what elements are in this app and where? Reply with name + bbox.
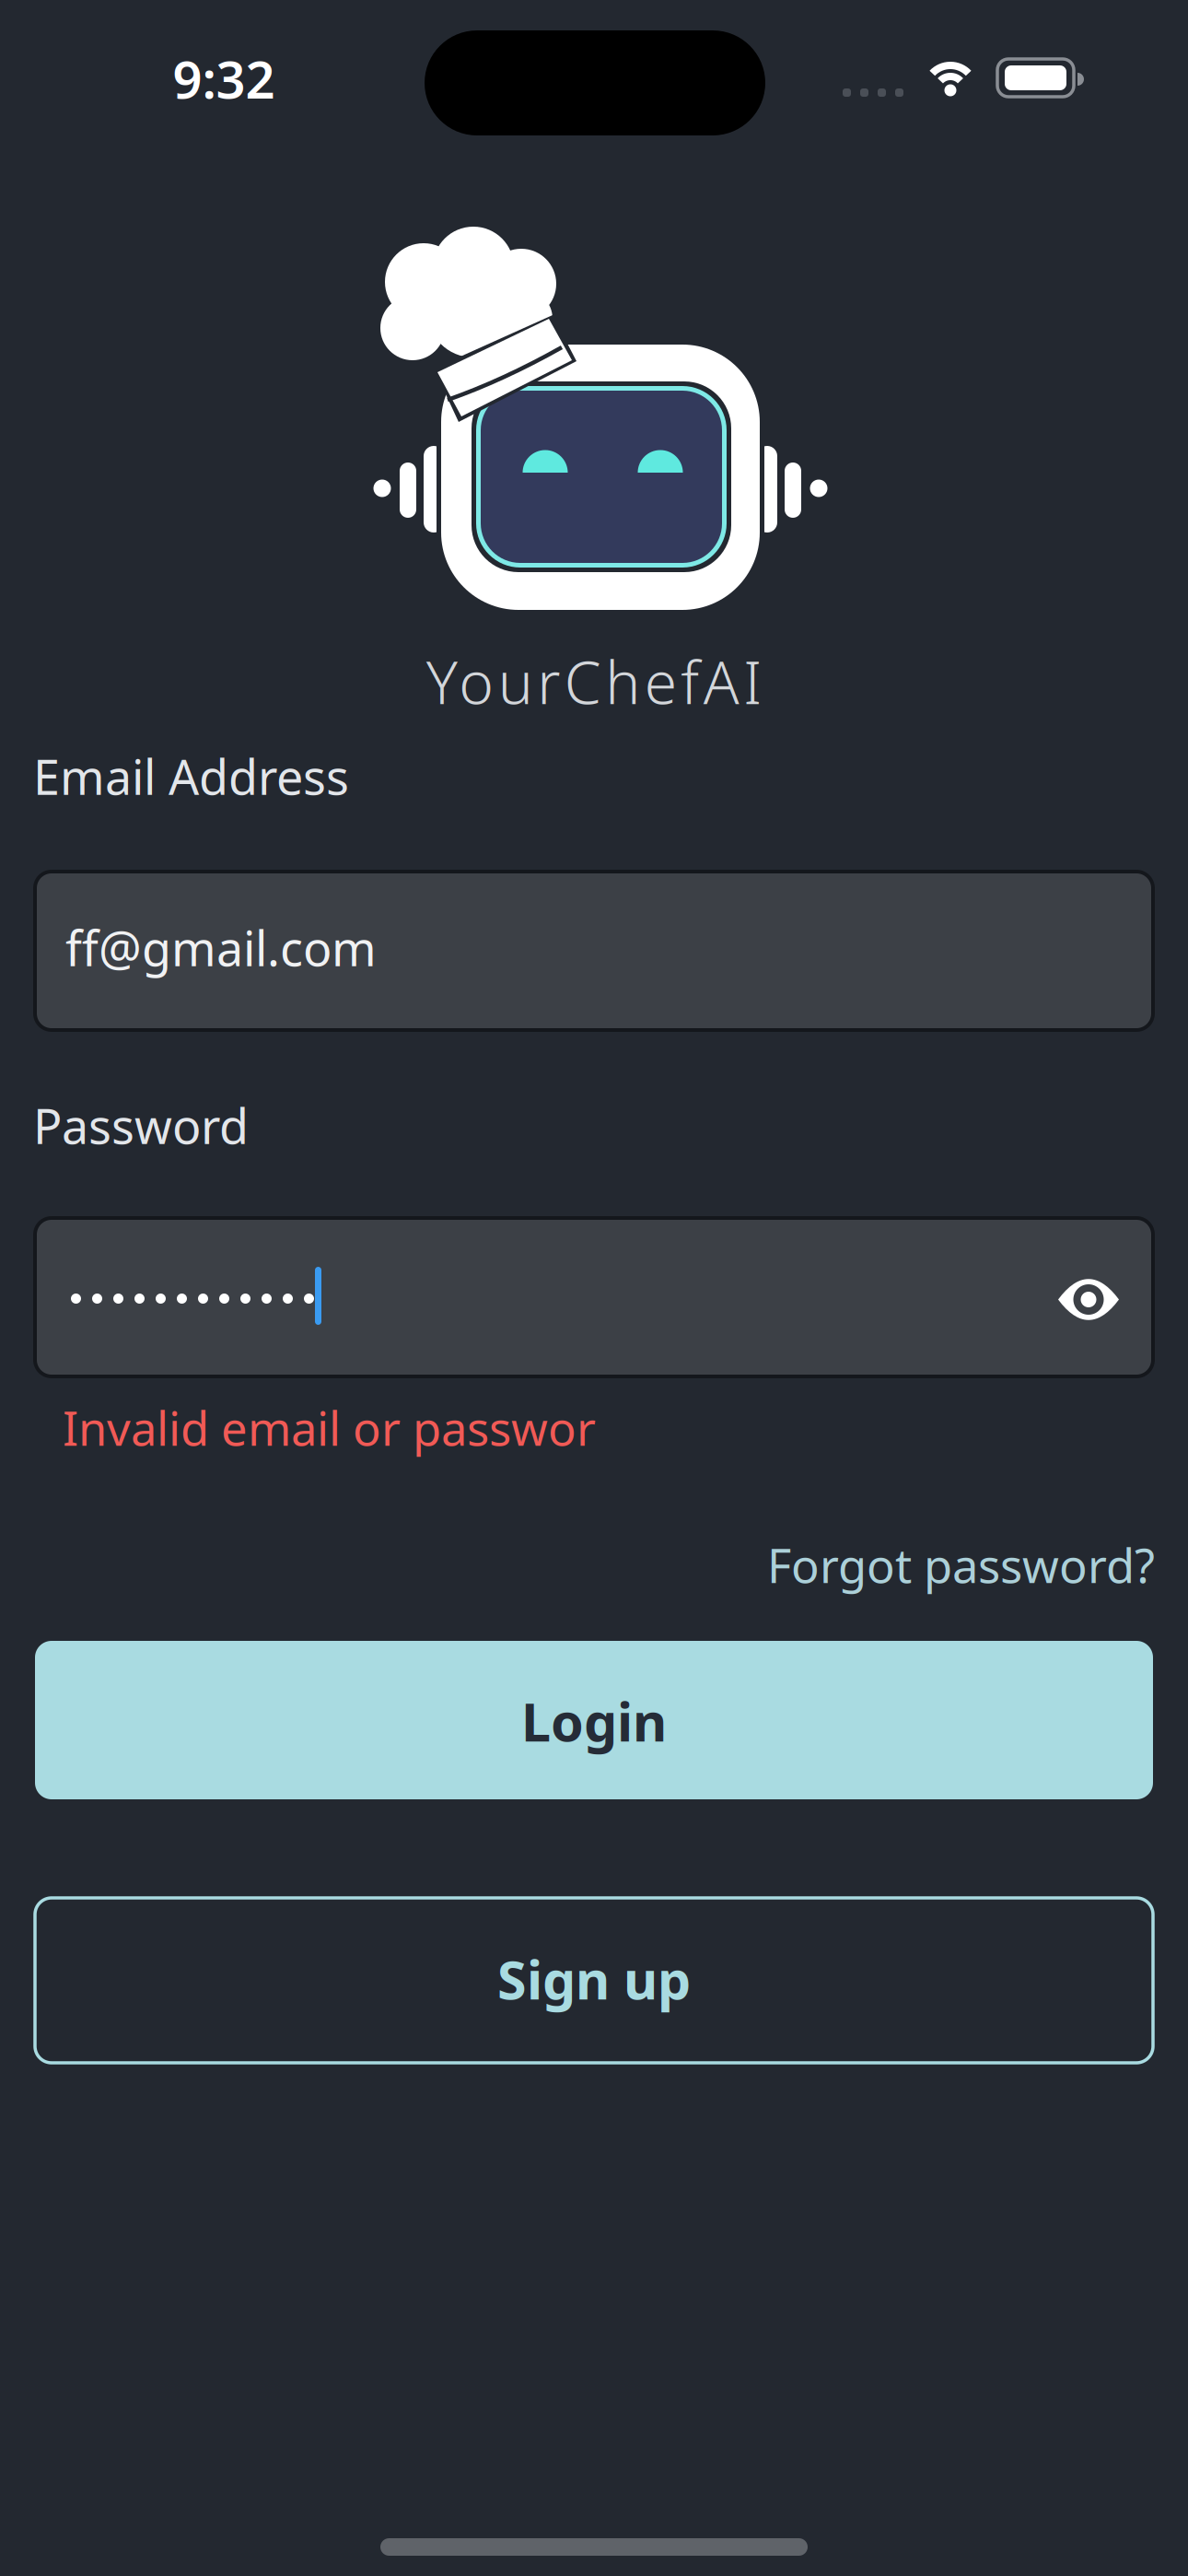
staticText: 9:32 [173,44,275,113]
staticText: Password [33,1094,249,1157]
staticText: Sign up [497,1944,691,2014]
staticText: Forgot password? [767,1534,1155,1596]
staticText: Invalid email or passwor [63,1397,596,1459]
staticText: ff@gmail.com [65,916,377,979]
staticText: Email Address [33,744,349,808]
staticText: Login [521,1686,667,1756]
staticText: YourChefAI [426,642,762,720]
